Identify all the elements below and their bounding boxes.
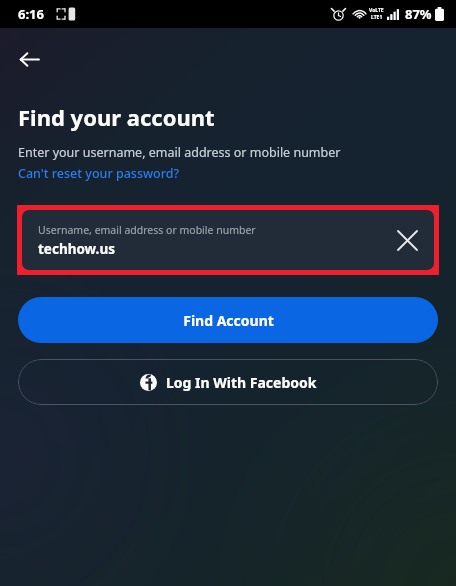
button[interactable]: Can't reset your password? (18, 165, 180, 182)
staticText: Log In With Facebook (166, 373, 317, 392)
button[interactable]: Username, email address or mobile number (22, 210, 434, 270)
button[interactable]: Find Account (18, 297, 438, 343)
button[interactable]: Back (8, 38, 50, 80)
staticText: 6:16 (18, 5, 44, 23)
staticText: Username, email address or mobile number (38, 223, 256, 237)
staticText: Find Account (183, 311, 274, 330)
staticText: Find your account (18, 102, 215, 132)
staticText: techhow.us (38, 240, 115, 258)
staticText: Enter your username, email address or mo… (18, 144, 341, 161)
staticText: VoLTE (369, 7, 384, 14)
staticText: LTE1 (371, 14, 383, 21)
button[interactable]: Clear text (388, 221, 426, 259)
button[interactable]: Log In With Facebook (18, 359, 438, 405)
staticText: 87% (405, 5, 432, 23)
